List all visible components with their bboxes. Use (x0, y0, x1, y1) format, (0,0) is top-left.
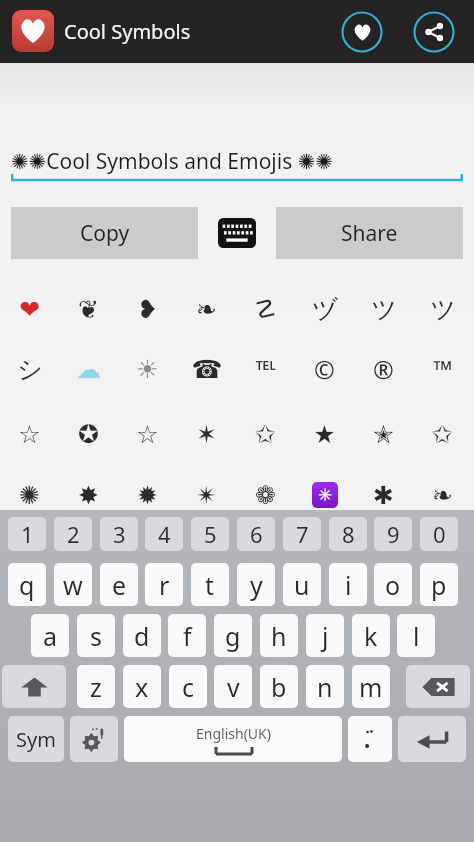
button[interactable]: Settings (70, 716, 118, 762)
button[interactable]: 3 (100, 517, 138, 551)
staticText: シ (17, 354, 43, 385)
button[interactable]: ❥ (118, 281, 177, 337)
button[interactable]: t (191, 563, 229, 606)
button[interactable]: ✺ (0, 467, 59, 523)
button[interactable]: ✸ (59, 467, 118, 523)
button[interactable]: ☎ (177, 341, 236, 397)
button[interactable]: ツ (354, 281, 413, 337)
button[interactable]: © (295, 341, 354, 397)
button[interactable]: ™ (413, 341, 472, 397)
button[interactable]: ✩ (236, 406, 295, 462)
button[interactable]: ✭ (354, 406, 413, 462)
button[interactable]: 9 (374, 517, 412, 551)
button[interactable]: 6 (237, 517, 275, 551)
button[interactable]: f (168, 614, 206, 657)
button[interactable]: ❦ (0, 527, 59, 583)
button[interactable]: a (31, 614, 69, 657)
button[interactable]: v (214, 665, 252, 708)
button[interactable]: ツ (413, 281, 472, 337)
button[interactable]: Share (413, 11, 455, 53)
button[interactable]: Shift (2, 665, 66, 708)
button[interactable]: ☁ (59, 341, 118, 397)
button[interactable]: w (54, 563, 92, 606)
staticText: 4 (158, 519, 171, 549)
button[interactable]: Space, English (UK) (124, 716, 342, 762)
button[interactable]: Copy (11, 207, 198, 259)
button[interactable]: ☆ (0, 406, 59, 462)
button[interactable]: Favourite (341, 11, 383, 53)
button[interactable]: ℡ (236, 341, 295, 397)
button[interactable]: i (329, 563, 367, 606)
button[interactable]: e (100, 563, 138, 606)
button[interactable]: ❤ (0, 281, 59, 337)
button[interactable]: ✽ (413, 527, 472, 583)
button[interactable]: ✳ (295, 467, 354, 523)
button[interactable]: ❅ (295, 527, 354, 583)
button[interactable]: u (283, 563, 321, 606)
button[interactable]: j (306, 614, 344, 657)
button[interactable]: ヅ (295, 281, 354, 337)
button[interactable]: g (214, 614, 252, 657)
button[interactable]: 7 (283, 517, 321, 551)
button[interactable]: k (352, 614, 390, 657)
button[interactable]: ✻ (118, 527, 177, 583)
button[interactable]: ❧ (177, 281, 236, 337)
button[interactable]: Keyboard (213, 207, 261, 259)
button[interactable]: p (420, 563, 458, 606)
button[interactable]: ® (354, 341, 413, 397)
button[interactable]: ❄ (354, 527, 413, 583)
button[interactable]: ☀ (118, 341, 177, 397)
button[interactable]: 1 (8, 517, 46, 551)
button[interactable]: 2 (54, 517, 92, 551)
button[interactable]: 8 (329, 517, 367, 551)
button[interactable]: q (8, 563, 46, 606)
staticText: u (294, 568, 310, 602)
button[interactable]: ❋ (59, 527, 118, 583)
button[interactable]: ❦ (59, 281, 118, 337)
button[interactable]: d (123, 614, 161, 657)
button[interactable]: c (169, 665, 207, 708)
button[interactable] (236, 527, 295, 583)
staticText: ® (373, 352, 394, 386)
button[interactable]: ✴ (177, 467, 236, 523)
button[interactable]: Sym (8, 716, 64, 762)
staticText: d (134, 619, 150, 653)
button[interactable]: 4 (145, 517, 183, 551)
button[interactable]: ✩ (413, 406, 472, 462)
staticText: l (413, 619, 420, 653)
button[interactable]: ✱ (354, 467, 413, 523)
button[interactable]: m (352, 665, 390, 708)
button[interactable]: ✹ (118, 467, 177, 523)
button[interactable]: Share (276, 207, 463, 259)
button[interactable]: l (397, 614, 435, 657)
button[interactable]: 0 (420, 517, 458, 551)
staticText: w (63, 568, 83, 602)
button[interactable]: ❁ (236, 467, 295, 523)
button[interactable]: ✪ (59, 406, 118, 462)
button[interactable]: 5 (191, 517, 229, 551)
button[interactable]: y (237, 563, 275, 606)
button[interactable]: ✺✺Cool Symbols and Emojis ✺✺ (11, 139, 463, 183)
button[interactable]: ❧ (413, 467, 472, 523)
button[interactable]: Period (348, 716, 392, 762)
button[interactable]: ★ (295, 406, 354, 462)
button[interactable]: r (145, 563, 183, 606)
staticText: 8 (342, 519, 355, 549)
button[interactable]: o (374, 563, 412, 606)
button[interactable]: s (77, 614, 115, 657)
button[interactable]: ✶ (177, 406, 236, 462)
staticText: f (183, 619, 192, 653)
button[interactable]: z (77, 665, 115, 708)
staticText: ✺ (19, 481, 40, 510)
button[interactable]: Enter (398, 716, 466, 762)
button[interactable]: h (260, 614, 298, 657)
button[interactable]: Backspace (406, 665, 470, 708)
button[interactable]: ✼ (177, 527, 236, 583)
button[interactable]: ☡ (236, 281, 295, 337)
button[interactable]: ☆ (118, 406, 177, 462)
button[interactable]: n (306, 665, 344, 708)
button[interactable]: b (260, 665, 298, 708)
staticText: ★ (313, 420, 336, 449)
button[interactable]: x (123, 665, 161, 708)
button[interactable]: シ (0, 341, 59, 397)
